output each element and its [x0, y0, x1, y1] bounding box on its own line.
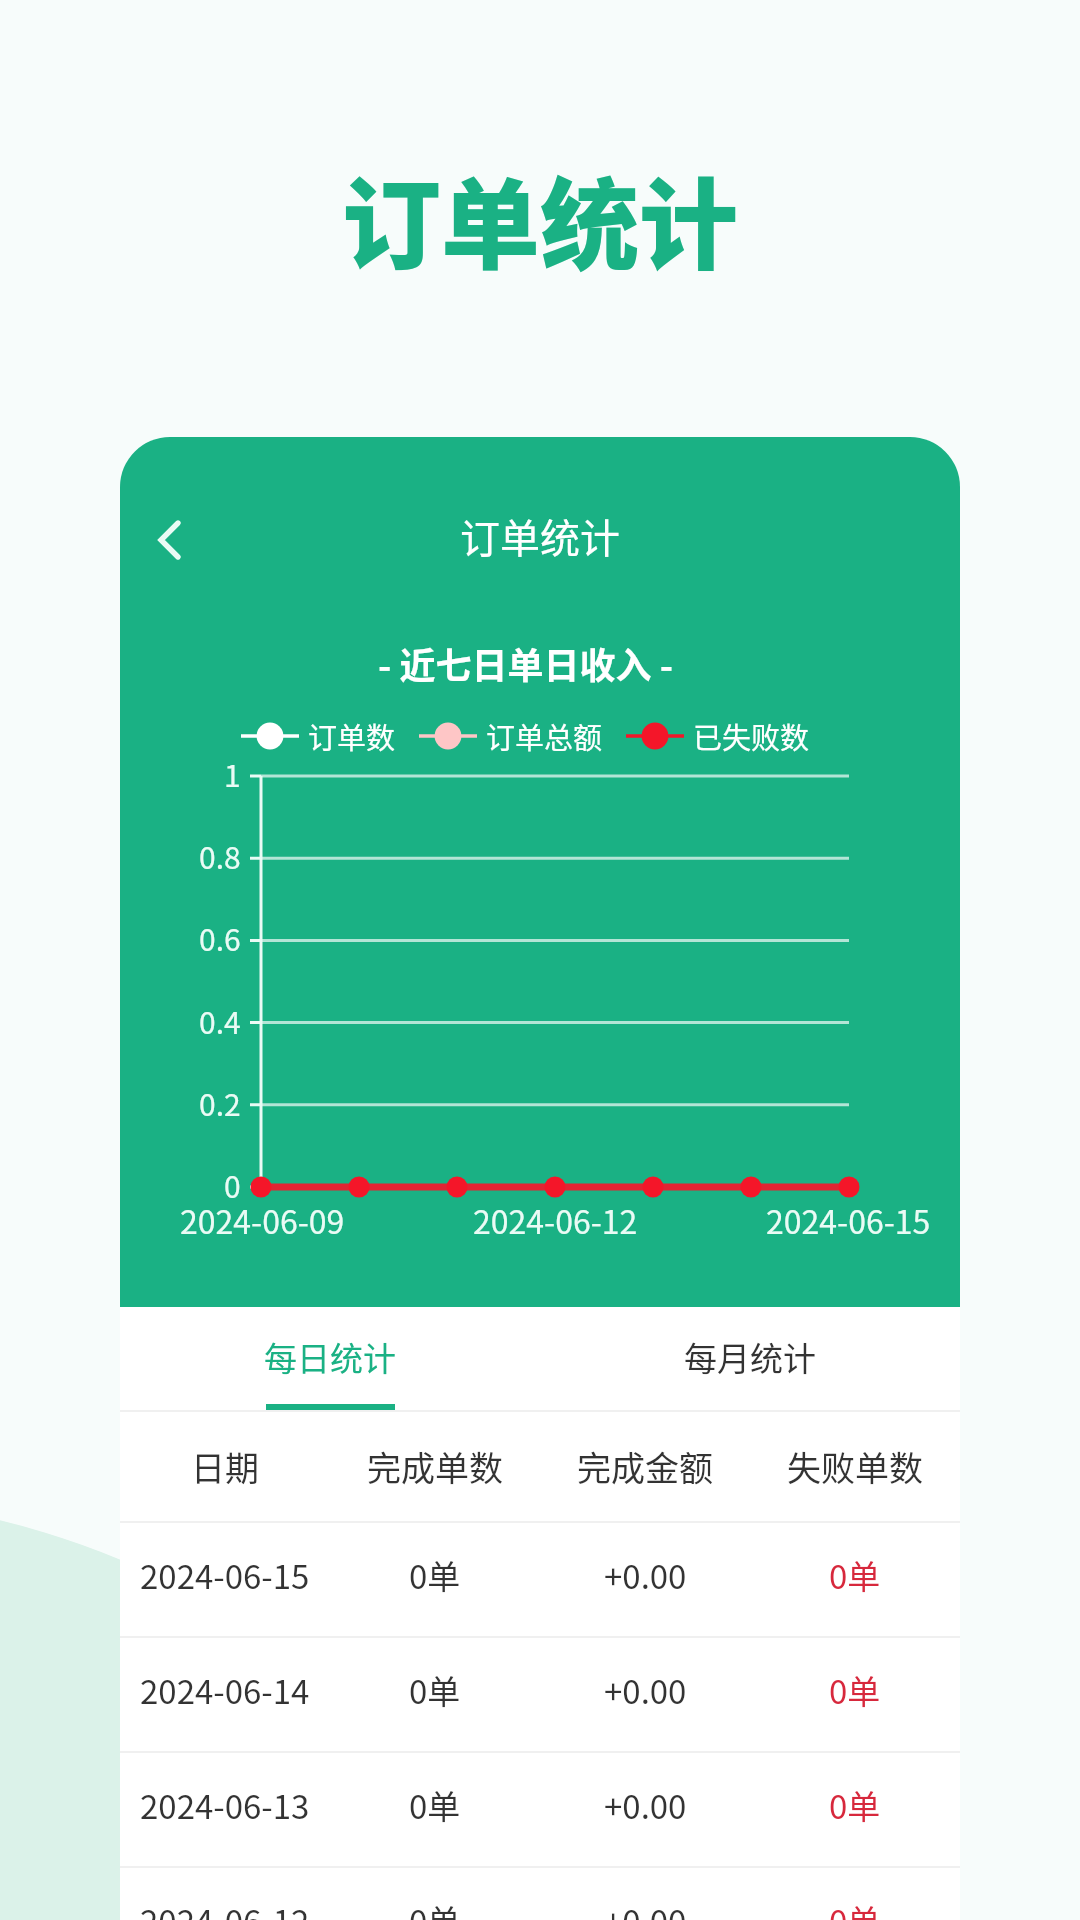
staticText: 0单: [409, 1781, 461, 1829]
staticText: +0.00: [604, 1551, 687, 1599]
staticText: 0单: [829, 1781, 881, 1829]
staticText: 0单: [409, 1896, 461, 1920]
staticText: 2024-06-15: [140, 1551, 310, 1599]
staticText: 每日统计: [264, 1333, 396, 1381]
staticText: 0单: [829, 1666, 881, 1714]
button[interactable]: 2024-06-12: [120, 1868, 960, 1920]
staticText: +0.00: [604, 1781, 687, 1829]
staticText: +0.00: [604, 1896, 687, 1920]
button[interactable]: 2024-06-15: [120, 1523, 960, 1636]
staticText: 0.6: [199, 916, 241, 958]
staticText: 0.4: [199, 999, 241, 1041]
button[interactable]: 2024-06-14: [120, 1638, 960, 1751]
staticText: 2024-06-12: [140, 1896, 310, 1920]
staticText: 订单总额: [486, 715, 603, 757]
staticText: 0: [224, 1163, 241, 1205]
staticText: 每月统计: [684, 1333, 816, 1381]
staticText: 0单: [829, 1551, 881, 1599]
staticText: 0单: [409, 1666, 461, 1714]
button[interactable]: Back: [133, 504, 205, 576]
staticText: 订单统计: [460, 507, 620, 565]
staticText: 0.2: [199, 1081, 241, 1123]
staticText: 完成单数: [367, 1442, 503, 1491]
staticText: 0单: [829, 1896, 881, 1920]
staticText: 1: [224, 752, 241, 794]
staticText: 订单数: [308, 715, 396, 757]
staticText: +0.00: [604, 1666, 687, 1714]
staticText: 失败单数: [787, 1442, 923, 1491]
button[interactable]: 每日统计: [120, 1307, 540, 1410]
staticText: 0.8: [199, 834, 241, 876]
staticText: 日期: [191, 1442, 259, 1491]
staticText: 2024-06-13: [140, 1781, 310, 1829]
staticText: 2024-06-14: [140, 1666, 310, 1714]
staticText: 订单统计: [342, 146, 738, 289]
staticText: 已失败数: [693, 715, 810, 757]
staticText: 2024-06-09: [180, 1197, 345, 1241]
button[interactable]: 每月统计: [540, 1307, 960, 1410]
staticText: 0单: [409, 1551, 461, 1599]
button[interactable]: 2024-06-13: [120, 1753, 960, 1866]
staticText: 完成金额: [577, 1442, 713, 1491]
staticText: - 近七日单日收入 -: [378, 637, 673, 689]
staticText: 2024-06-15: [766, 1197, 931, 1241]
staticText: 2024-06-12: [473, 1197, 638, 1241]
